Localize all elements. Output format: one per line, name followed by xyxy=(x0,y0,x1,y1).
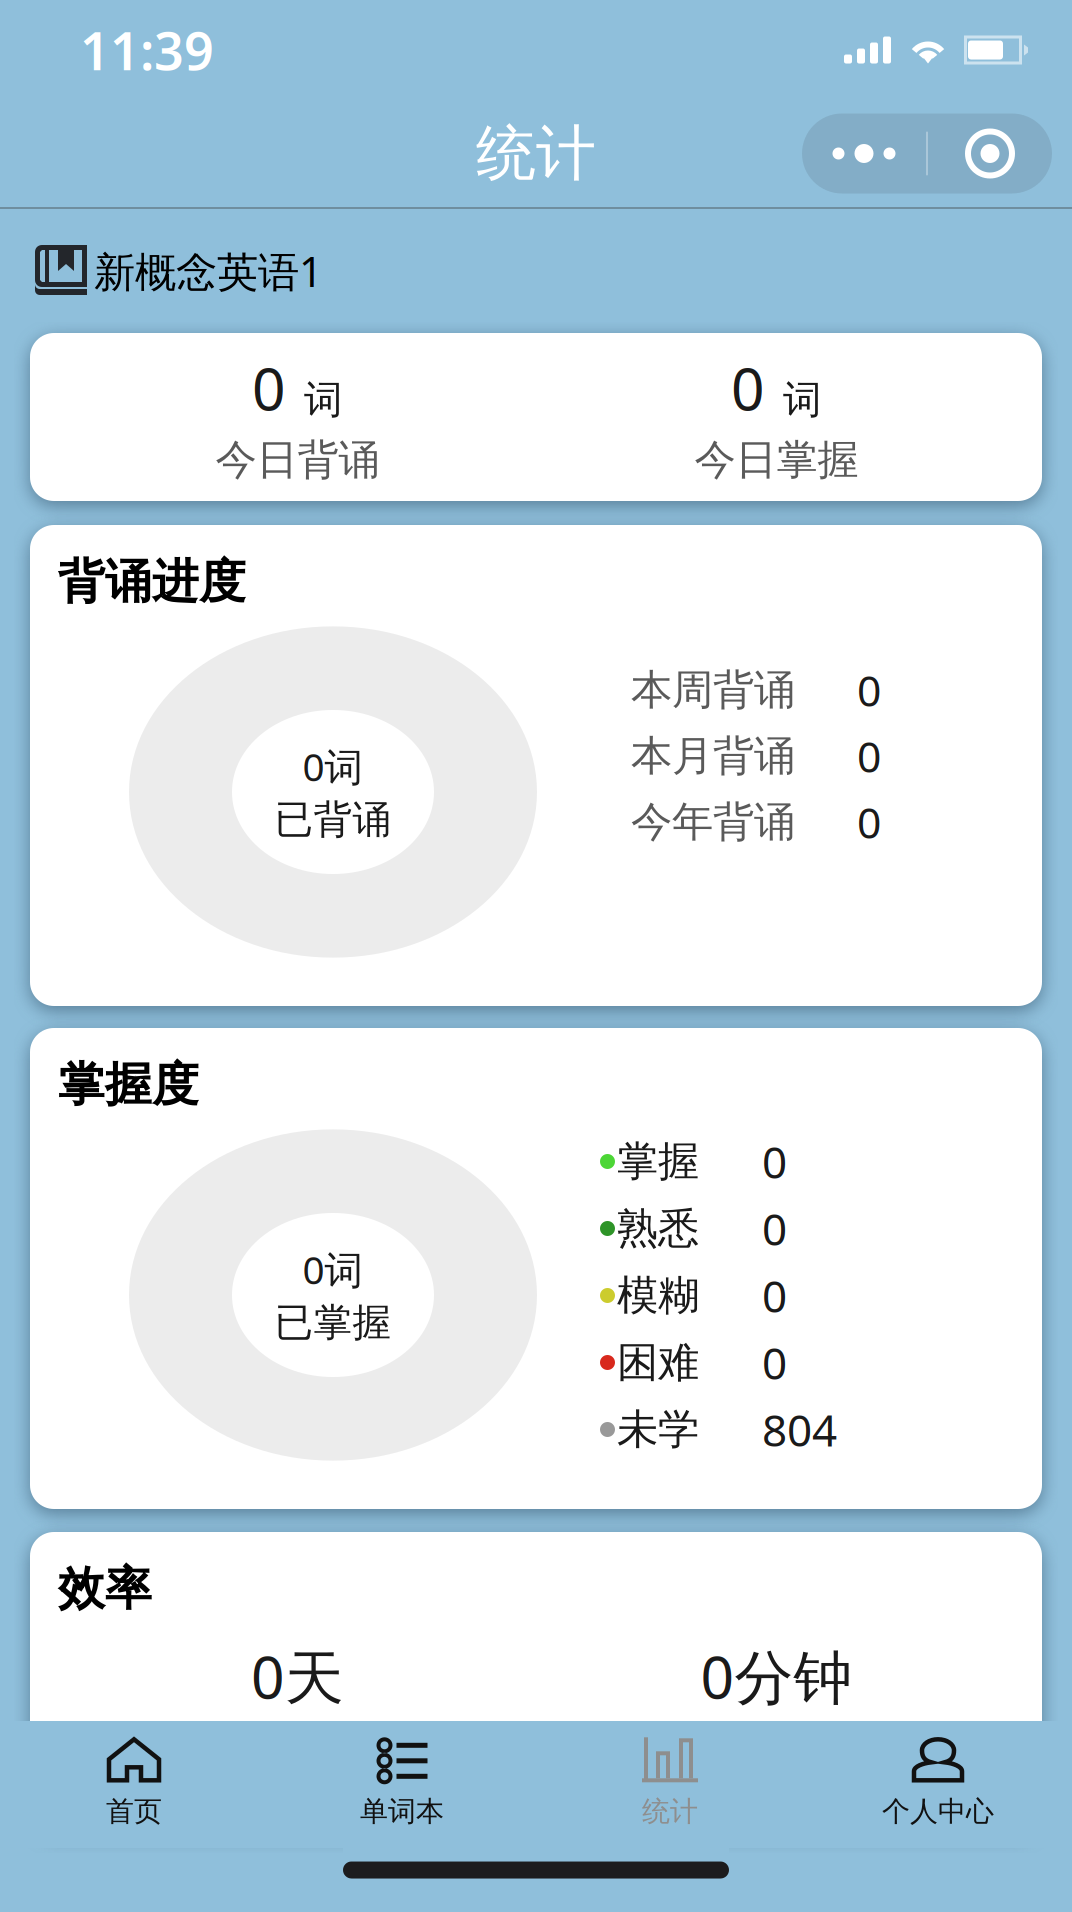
staticText: 今日背诵 xyxy=(215,435,379,485)
staticText: 0词 xyxy=(302,1244,363,1295)
staticText: 统计 xyxy=(476,117,596,190)
staticText: 11:39 xyxy=(80,15,214,85)
staticText: 效率 xyxy=(58,1560,152,1617)
button[interactable]: 首页 xyxy=(0,1721,268,1848)
staticText: 单词本 xyxy=(360,1794,444,1829)
staticText: 0 xyxy=(252,349,286,427)
staticText: 首页 xyxy=(106,1794,162,1829)
staticText: 0天 xyxy=(251,1637,344,1715)
staticText: 本月背诵 xyxy=(631,731,795,781)
staticText: 新概念英语1 xyxy=(94,244,323,298)
staticText: 已背诵 xyxy=(274,796,391,843)
button[interactable]: More options xyxy=(802,113,1052,193)
staticText: 掌握度 xyxy=(58,1056,199,1113)
staticText: 今日掌握 xyxy=(694,435,858,485)
staticText: 本周背诵 xyxy=(631,665,795,715)
staticText: 0 xyxy=(857,794,881,850)
staticText: 词 xyxy=(783,376,822,424)
staticText: 0 xyxy=(857,662,881,718)
staticText: 掌握 xyxy=(617,1136,699,1187)
staticText: 未学 xyxy=(617,1404,699,1455)
staticText: 熟悉 xyxy=(617,1203,699,1254)
staticText: 已掌握 xyxy=(274,1299,391,1346)
staticText: 困难 xyxy=(617,1337,699,1388)
staticText: 0 xyxy=(762,1266,787,1325)
staticText: 今年背诵 xyxy=(631,797,795,847)
staticText: 0词 xyxy=(302,741,363,792)
button[interactable]: 个人中心 xyxy=(804,1721,1072,1848)
staticText: 累计天数 xyxy=(215,1721,379,1772)
staticText: 0分钟 xyxy=(700,1637,852,1715)
staticText: 0 xyxy=(731,349,765,427)
button[interactable]: 单词本 xyxy=(268,1721,536,1848)
staticText: 词 xyxy=(304,376,343,424)
staticText: 统计 xyxy=(642,1794,698,1829)
staticText: 0 xyxy=(762,1132,787,1191)
staticText: 个人中心 xyxy=(882,1794,994,1829)
staticText: 模糊 xyxy=(617,1270,699,1321)
staticText: 0 xyxy=(857,728,881,784)
staticText: 0 xyxy=(762,1333,787,1392)
staticText: 背诵进度 xyxy=(58,553,246,610)
staticText: 804 xyxy=(762,1400,837,1459)
button[interactable]: 统计 xyxy=(536,1721,804,1848)
staticText: 0 xyxy=(762,1199,787,1258)
